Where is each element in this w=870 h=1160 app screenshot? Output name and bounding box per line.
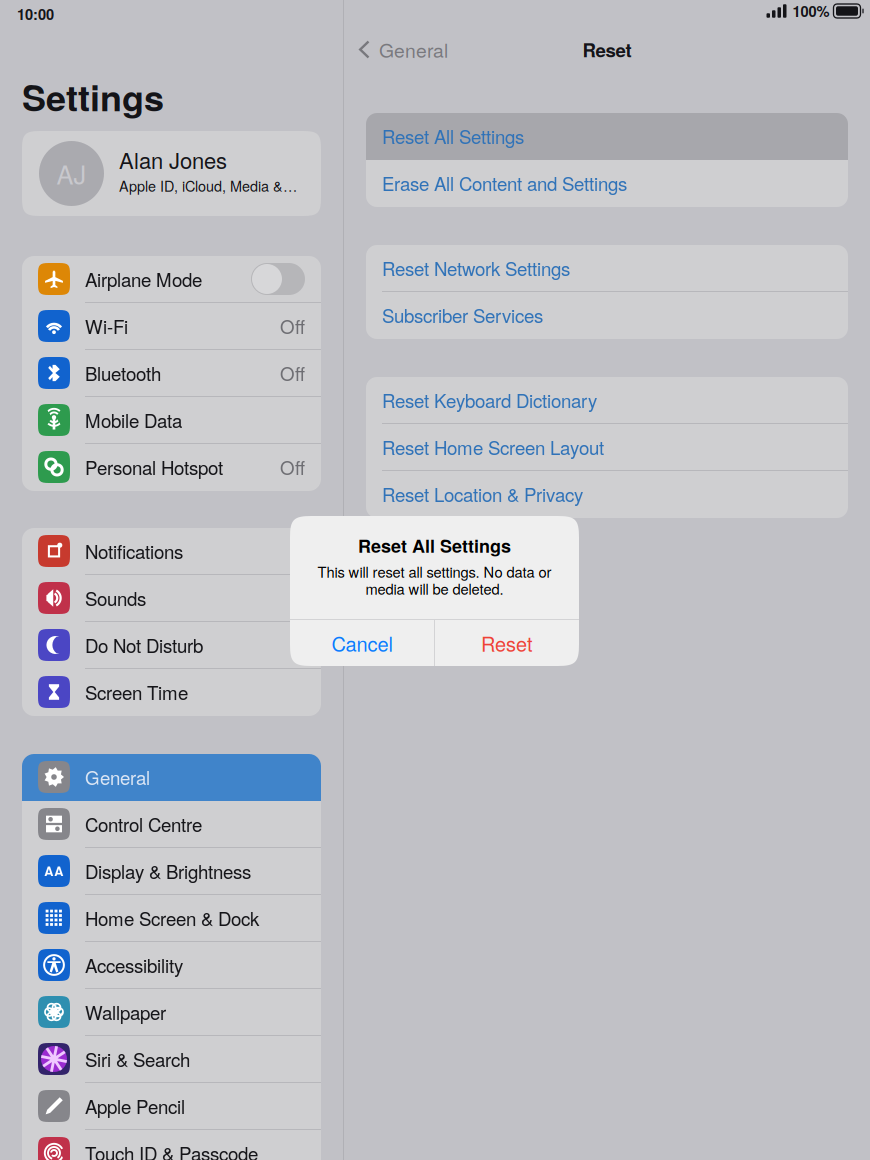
staticText: Notifications [85,538,183,564]
staticText: Control Centre [85,811,202,837]
staticText: Mobile Data [85,407,182,433]
staticText: Reset All Settings [358,533,511,558]
button[interactable]: AA [22,848,321,895]
button[interactable]: AJ [22,131,321,216]
staticText: General [379,36,448,63]
staticText: Settings [22,71,164,122]
staticText: 100% [792,0,829,21]
button[interactable]: Reset All Settings [366,113,848,160]
button[interactable]: Do Not Disturb [22,622,321,669]
staticText: Cancel [331,629,392,657]
staticText: Personal Hotspot [85,454,223,480]
button[interactable]: Wallpaper [22,989,321,1036]
staticText: Airplane Mode [85,266,202,292]
button[interactable]: Reset [435,620,579,666]
button[interactable]: Control Centre [22,801,321,848]
staticText: AA [44,861,64,881]
staticText: Display & Brightness [85,858,251,884]
staticText: Accessibility [85,952,183,978]
staticText: Apple ID, iCloud, Media &… [119,175,297,196]
button[interactable]: Mobile Data [22,397,321,444]
staticText: media will be deleted. [365,578,503,599]
staticText: Do Not Disturb [85,632,203,658]
staticText: Reset Network Settings [382,255,570,281]
button[interactable]: Reset Keyboard Dictionary [366,377,848,424]
button[interactable]: General [22,754,321,801]
button[interactable]: Personal Hotspot [22,444,321,491]
button[interactable]: Home Screen & Dock [22,895,321,942]
staticText: Screen Time [85,679,188,705]
button[interactable]: Airplane Mode [22,256,321,303]
button[interactable]: Subscriber Services [366,292,848,339]
button[interactable]: Sounds [22,575,321,622]
staticText: Bluetooth [85,360,161,386]
staticText: Reset Home Screen Layout [382,434,604,460]
staticText: This will reset all settings. No data or [317,561,551,582]
staticText: Off [280,313,305,339]
staticText: Reset Location & Privacy [382,481,583,507]
staticText: Reset [481,629,533,657]
staticText: Alan Jones [119,144,227,175]
staticText: Erase All Content and Settings [382,170,627,196]
staticText: Wallpaper [85,999,166,1025]
button[interactable]: Apple Pencil [22,1083,321,1130]
button[interactable]: General [352,30,454,68]
button[interactable]: Notifications [22,528,321,575]
button[interactable]: Reset Network Settings [366,245,848,292]
staticText: Subscriber Services [382,302,543,328]
staticText: Touch ID & Passcode [85,1140,258,1160]
button[interactable]: Touch ID & Passcode [22,1130,321,1160]
staticText: Sounds [85,585,146,611]
staticText: Reset [582,36,631,63]
staticText: Off [280,454,305,480]
staticText: Home Screen & Dock [85,905,259,931]
staticText: Reset All Settings [382,123,524,149]
button[interactable]: Screen Time [22,669,321,716]
button[interactable]: Accessibility [22,942,321,989]
staticText: AJ [56,155,86,192]
button[interactable]: Cancel [290,620,434,666]
staticText: Wi-Fi [85,313,128,339]
staticText: General [85,764,150,790]
button[interactable]: Bluetooth [22,350,321,397]
staticText: Reset Keyboard Dictionary [382,387,597,413]
staticText: Siri & Search [85,1046,190,1072]
button[interactable]: Reset Location & Privacy [366,471,848,518]
button[interactable]: Erase All Content and Settings [366,160,848,207]
button[interactable]: Reset Home Screen Layout [366,424,848,471]
staticText: Apple Pencil [85,1093,185,1119]
button[interactable]: Wi-Fi [22,303,321,350]
staticText: 10:00 [17,3,54,24]
button[interactable]: Siri & Search [22,1036,321,1083]
staticText: Off [280,360,305,386]
